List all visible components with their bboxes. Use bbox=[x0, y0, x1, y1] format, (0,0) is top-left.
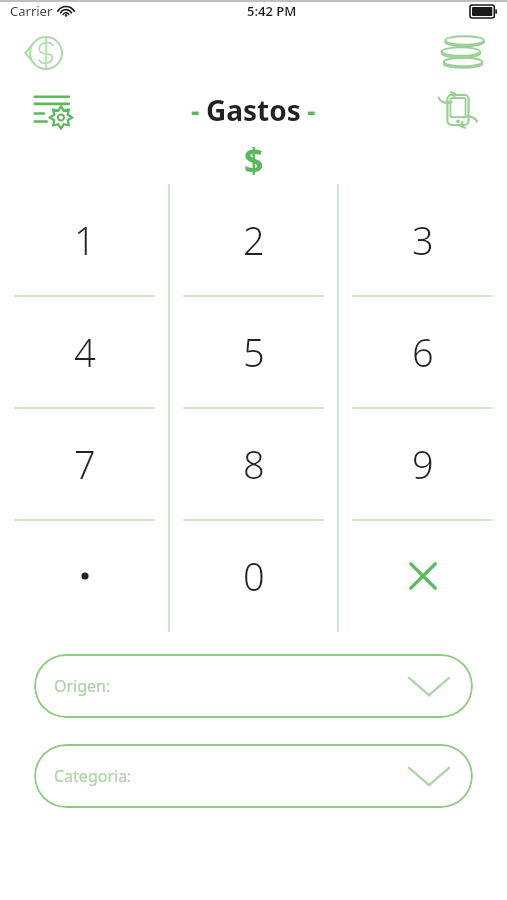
staticText: 0 bbox=[243, 550, 265, 602]
staticText: 1 bbox=[74, 214, 96, 266]
button[interactable]: Coins bbox=[431, 29, 493, 77]
button[interactable]: 4 bbox=[0, 296, 169, 408]
button[interactable]: 5 bbox=[169, 296, 338, 408]
staticText: 9 bbox=[412, 438, 434, 490]
button[interactable]: Back bbox=[14, 29, 78, 77]
button[interactable] bbox=[0, 520, 169, 632]
button[interactable]: Categoria: bbox=[34, 744, 473, 808]
staticText: 5:42 PM bbox=[247, 2, 297, 20]
staticText: 2 bbox=[243, 214, 265, 266]
staticText: - bbox=[191, 93, 200, 128]
button[interactable]: 9 bbox=[338, 408, 507, 520]
button[interactable]: 1 bbox=[0, 184, 169, 296]
button[interactable]: Delete bbox=[338, 520, 507, 632]
button[interactable]: 0 bbox=[169, 520, 338, 632]
button[interactable]: Filter settings bbox=[26, 84, 84, 136]
staticText: 5 bbox=[243, 326, 265, 378]
staticText: Origen: bbox=[54, 675, 111, 697]
button[interactable]: 7 bbox=[0, 408, 169, 520]
button[interactable]: Rotate screen bbox=[429, 84, 487, 136]
staticText: 4 bbox=[74, 326, 96, 378]
button[interactable]: 8 bbox=[169, 408, 338, 520]
staticText: 3 bbox=[412, 214, 434, 266]
staticText: 8 bbox=[243, 438, 265, 490]
button[interactable]: 6 bbox=[338, 296, 507, 408]
staticText: 6 bbox=[412, 326, 434, 378]
other: Delete bbox=[406, 559, 440, 593]
button[interactable]: 2 bbox=[169, 184, 338, 296]
staticText: Gastos bbox=[206, 91, 301, 129]
staticText: Categoria: bbox=[54, 765, 132, 787]
staticText: 7 bbox=[74, 438, 96, 490]
button[interactable]: 3 bbox=[338, 184, 507, 296]
staticText: Carrier bbox=[10, 2, 53, 20]
button[interactable]: Origen: bbox=[34, 654, 473, 718]
staticText: $ bbox=[244, 137, 264, 183]
staticText: - bbox=[307, 93, 316, 128]
